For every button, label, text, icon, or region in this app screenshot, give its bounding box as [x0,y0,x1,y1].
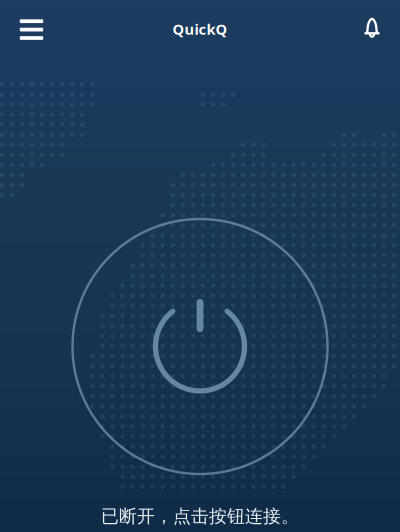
button[interactable]: Connect [72,218,328,474]
button[interactable]: Menu [9,8,53,52]
staticText: 已断开，点击按钮连接。 [101,505,299,527]
button[interactable]: Notifications [350,6,394,50]
staticText: QuickQ [172,19,227,39]
